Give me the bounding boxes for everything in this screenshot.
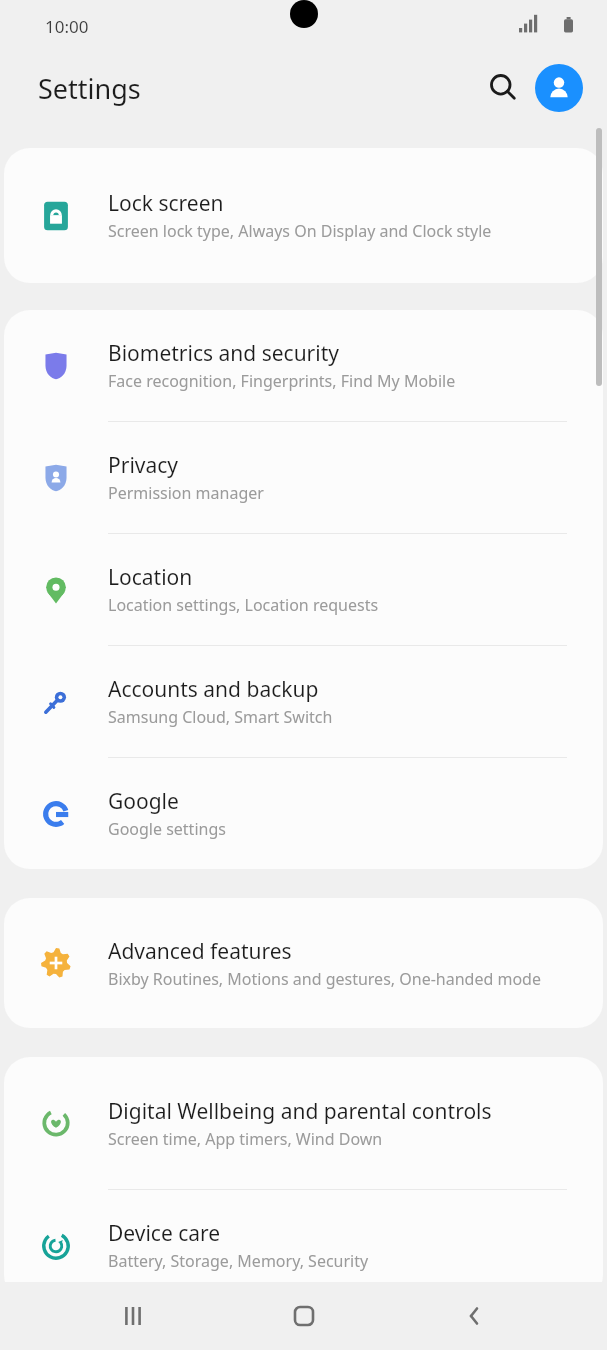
staticText: Google settings [108,818,226,840]
staticText: Biometrics and security [108,339,339,368]
staticText: Lock screen [108,189,224,218]
staticText: Face recognition, Fingerprints, Find My … [108,370,456,392]
staticText: Digital Wellbeing and parental controls [108,1097,492,1126]
staticText: Device care [108,1219,221,1248]
button[interactable]: Google [4,758,603,869]
button[interactable]: Digital Wellbeing and parental controls [4,1057,603,1189]
staticText: Privacy [108,451,179,480]
staticText: Screen time, App timers, Wind Down [108,1128,383,1150]
staticText: Advanced features [108,937,292,966]
staticText: Bixby Routines, Motions and gestures, On… [108,968,541,990]
button[interactable]: Advanced features [4,898,603,1028]
staticText: Permission manager [108,482,264,504]
button[interactable]: Back [437,1282,511,1350]
button[interactable]: Location [4,534,603,645]
button[interactable]: Account [535,64,583,112]
button[interactable]: Biometrics and security [4,310,603,421]
staticText: Settings [38,70,141,107]
button[interactable]: Device care [4,1190,603,1301]
button[interactable]: Lock screen [4,148,603,283]
button[interactable]: Search [477,62,529,114]
staticText: Location settings, Location requests [108,594,379,616]
staticText: Location [108,563,193,592]
button[interactable]: Accounts and backup [4,646,603,757]
button[interactable]: Privacy [4,422,603,533]
staticText: Battery, Storage, Memory, Security [108,1250,369,1272]
staticText: Google [108,787,179,816]
staticText: Accounts and backup [108,675,319,704]
staticText: 10:00 [45,15,89,38]
button[interactable]: Recents [96,1282,170,1350]
staticText: Screen lock type, Always On Display and … [108,220,492,242]
button[interactable]: Home [267,1282,341,1350]
staticText: Samsung Cloud, Smart Switch [108,706,333,728]
